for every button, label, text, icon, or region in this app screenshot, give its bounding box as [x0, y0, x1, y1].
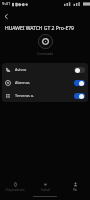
button[interactable]: Yo — [60, 181, 90, 192]
button[interactable]: Avisos — [2, 63, 88, 76]
staticText: Yo — [73, 187, 77, 192]
staticText: Conectado — [37, 52, 54, 56]
staticText: HUAWEI WATCH GT 2 Pro-E79 — [5, 25, 74, 32]
button[interactable]: Off — [74, 67, 85, 73]
staticText: Dispositivos — [5, 187, 25, 192]
button[interactable]: On — [74, 80, 85, 86]
button[interactable]: Alarmas — [2, 76, 88, 89]
button[interactable]: On — [74, 93, 85, 99]
button[interactable]: Dispositivos — [0, 181, 30, 192]
staticText: Salud — [41, 187, 50, 192]
staticText: Terceras a. — [15, 93, 35, 98]
button[interactable]: Salud — [30, 181, 60, 192]
button[interactable]: Back — [2, 12, 11, 21]
button[interactable]: Terceras a. — [2, 89, 88, 102]
staticText: Alarmas — [15, 80, 30, 85]
staticText: 9:41 — [2, 1, 11, 7]
staticText: Avisos — [15, 67, 27, 72]
